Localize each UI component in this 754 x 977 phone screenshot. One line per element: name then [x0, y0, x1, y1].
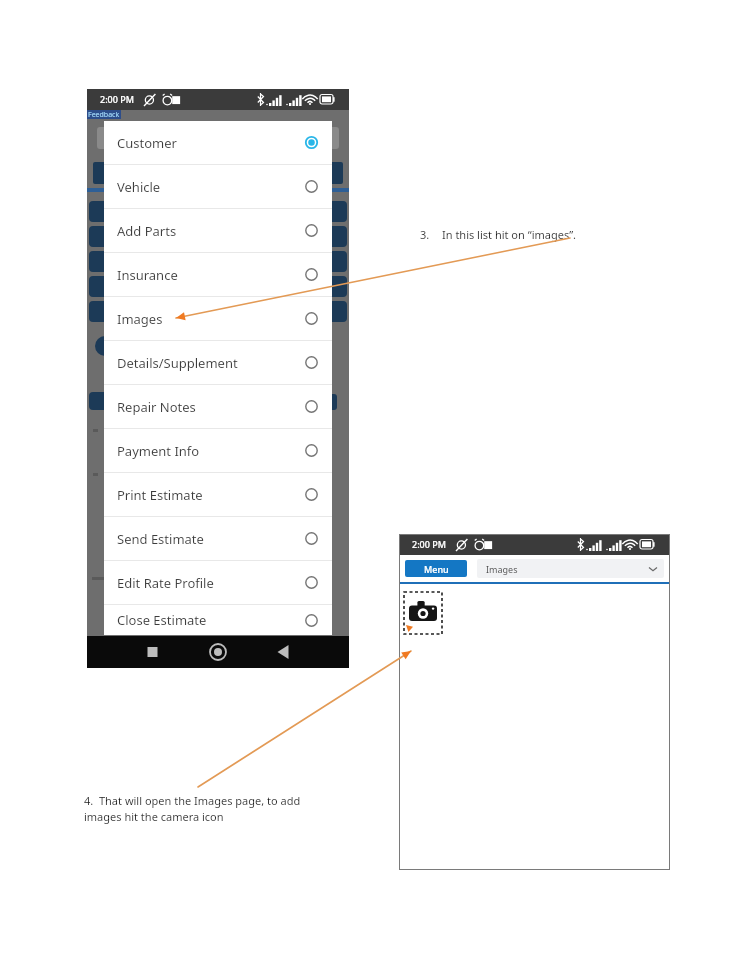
button[interactable]: Details/Supplement	[104, 341, 332, 384]
button[interactable]: Payment Info	[104, 429, 332, 472]
button[interactable]: Vehicle	[104, 165, 332, 208]
button[interactable]: Menu	[405, 560, 467, 577]
button[interactable]: Send Estimate	[104, 517, 332, 560]
button[interactable]: Close Estimate	[104, 605, 332, 635]
staticText: Add Parts	[117, 222, 305, 240]
staticText: Menu	[424, 563, 449, 575]
staticText: Edit Rate Profile	[117, 574, 305, 592]
staticText: Feedback	[88, 110, 120, 119]
button[interactable]: Edit Rate Profile	[104, 561, 332, 604]
button[interactable]: Print Estimate	[104, 473, 332, 516]
staticText: 2:00 PM	[100, 93, 134, 105]
staticText: Insurance	[117, 266, 305, 284]
button[interactable]: Customer	[104, 121, 332, 164]
staticText: Details/Supplement	[117, 354, 305, 372]
staticText: Payment Info	[117, 442, 305, 460]
staticText: 3.	[420, 227, 430, 242]
button[interactable]: Repair Notes	[104, 385, 332, 428]
staticText: Print Estimate	[117, 486, 305, 504]
staticText: Repair Notes	[117, 398, 305, 416]
staticText: Images	[486, 563, 649, 575]
button[interactable]: Add Parts	[104, 209, 332, 252]
staticText: Close Estimate	[117, 611, 305, 629]
staticText: 4. That will open the Images page, to ad…	[84, 793, 334, 824]
button[interactable]: Insurance	[104, 253, 332, 296]
button[interactable]: Images	[104, 297, 332, 340]
staticText: Vehicle	[117, 178, 305, 196]
staticText: 2:00 PM	[412, 538, 446, 550]
button[interactable]: Add image with camera	[404, 592, 442, 634]
staticText: Customer	[117, 134, 305, 152]
staticText: Send Estimate	[117, 530, 305, 548]
staticText: Images	[117, 310, 305, 328]
button[interactable]: Images	[477, 559, 664, 578]
staticText: In this list hit on “images”.	[442, 227, 577, 242]
